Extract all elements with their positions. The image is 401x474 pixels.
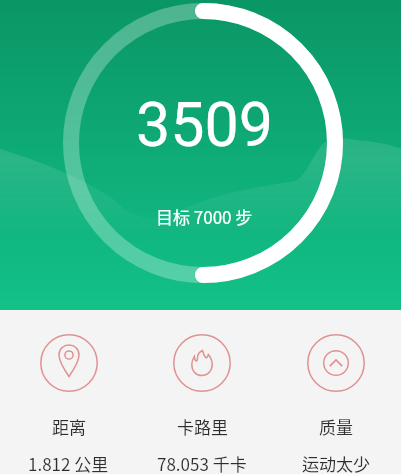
staticText: 1.812 公里: [28, 451, 109, 474]
staticText: 目标 7000 步: [156, 204, 253, 229]
staticText: 78.053 千卡: [157, 451, 247, 474]
other: 距离: [40, 334, 98, 392]
button[interactable]: 卡路里: [135, 334, 269, 474]
staticText: 质量: [319, 414, 353, 439]
button[interactable]: 质量: [269, 334, 401, 474]
other: 卡路里: [173, 334, 231, 392]
staticText: 卡路里: [177, 414, 228, 439]
button[interactable]: 距离: [2, 334, 135, 474]
staticText: 距离: [52, 414, 86, 439]
staticText: 运动太少: [302, 451, 370, 474]
other: 质量: [307, 334, 365, 392]
staticText: 3509: [136, 89, 274, 160]
